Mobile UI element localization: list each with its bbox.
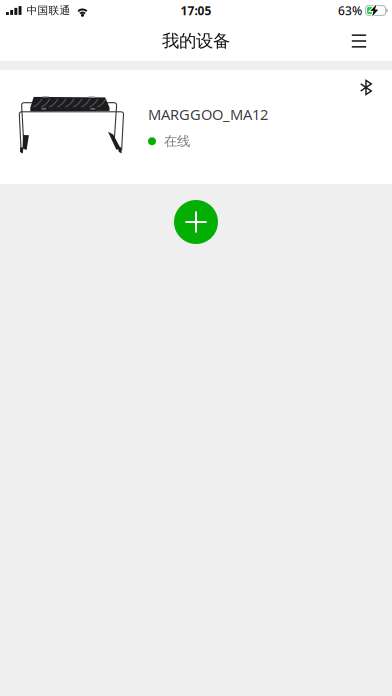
staticText: 中国联通 (26, 4, 70, 17)
button[interactable]: MARGGOO_MA12 在线 (0, 70, 392, 184)
staticText: MARGGOO_MA12 (148, 105, 268, 124)
staticText: 17:05 (180, 2, 211, 18)
staticText: 我的设备 (162, 30, 230, 52)
button[interactable]: 添加设备 (174, 200, 218, 244)
staticText: 在线 (164, 133, 190, 149)
button[interactable]: 菜单 (337, 21, 381, 61)
staticText: 63% (338, 2, 362, 18)
